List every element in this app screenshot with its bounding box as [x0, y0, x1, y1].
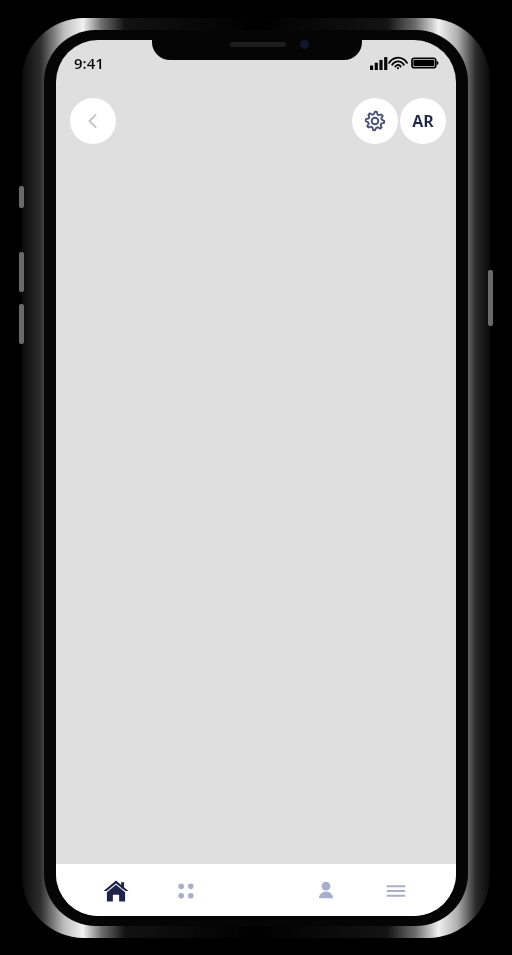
button[interactable]: AR view: [400, 98, 446, 144]
button[interactable]: Profile: [306, 874, 346, 908]
button[interactable]: Back: [70, 98, 116, 144]
button[interactable]: Categories: [166, 874, 206, 908]
button[interactable]: Home: [96, 874, 136, 908]
staticText: AR: [412, 110, 434, 132]
button[interactable]: Settings: [352, 98, 398, 144]
staticText: 9:41: [74, 53, 104, 73]
button[interactable]: Menu: [376, 874, 416, 908]
